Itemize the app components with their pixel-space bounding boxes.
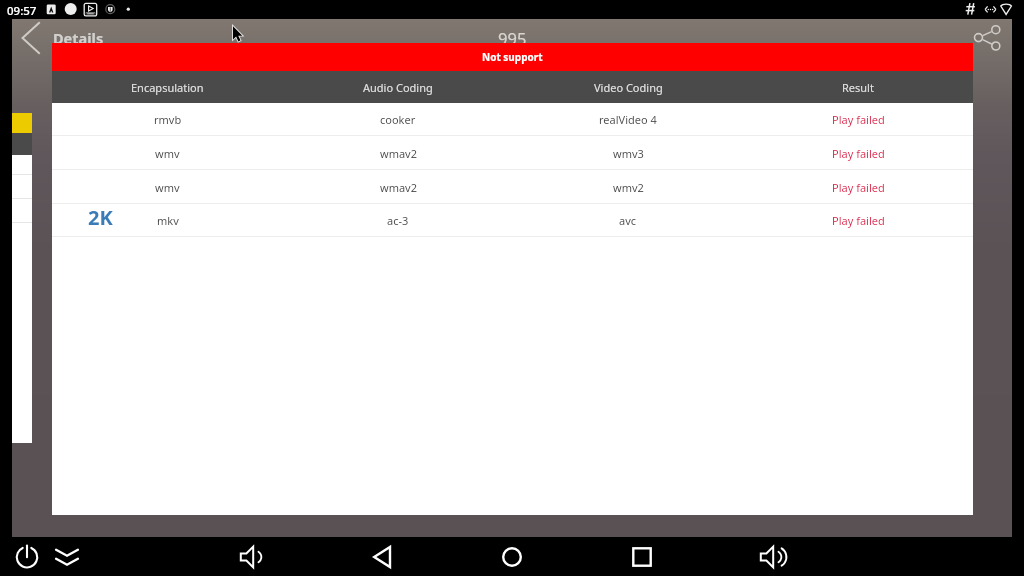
button[interactable]: Not support: [52, 43, 973, 71]
button[interactable]: wmv: [52, 170, 973, 204]
staticText: Play failed: [832, 213, 885, 228]
button[interactable]: Recents: [624, 537, 660, 576]
button[interactable]: Power: [9, 537, 45, 576]
button[interactable]: rmvb: [52, 103, 973, 136]
staticText: realVideo 4: [599, 112, 657, 127]
staticText: wmav2: [380, 180, 417, 195]
button[interactable]: Volume down: [232, 537, 268, 576]
button[interactable]: Collapse: [49, 537, 85, 576]
button[interactable]: mkv: [52, 204, 973, 237]
staticText: ac-3: [387, 213, 409, 228]
staticText: 09:57: [7, 3, 37, 19]
button[interactable]: Volume up: [752, 537, 788, 576]
button[interactable]: Home: [494, 537, 530, 576]
staticText: Audio Coding: [363, 80, 433, 95]
staticText: 995: [498, 27, 527, 49]
staticText: Result: [842, 80, 874, 95]
staticText: wmav2: [380, 146, 417, 161]
staticText: Video Coding: [594, 80, 663, 95]
button[interactable]: Share: [970, 21, 1004, 55]
staticText: wmv: [155, 146, 180, 161]
staticText: Play failed: [832, 146, 885, 161]
staticText: wmv3: [613, 146, 644, 161]
button[interactable]: Back: [13, 21, 47, 55]
button[interactable]: wmv: [52, 136, 973, 170]
button[interactable]: Back: [364, 537, 400, 576]
staticText: Play failed: [832, 180, 885, 195]
staticText: wmv: [155, 180, 180, 195]
staticText: cooker: [380, 112, 416, 127]
staticText: Play failed: [832, 112, 885, 127]
staticText: mkv: [157, 213, 179, 228]
staticText: Details: [53, 28, 104, 48]
staticText: Not support: [482, 50, 543, 64]
staticText: wmv2: [613, 180, 644, 195]
staticText: avc: [619, 213, 637, 228]
staticText: rmvb: [154, 112, 182, 127]
staticText: 2K: [88, 204, 113, 231]
staticText: Encapsulation: [131, 80, 204, 95]
